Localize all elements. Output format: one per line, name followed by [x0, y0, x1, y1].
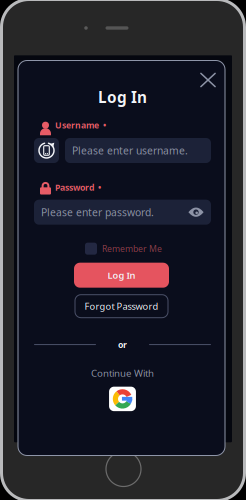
button[interactable]: Continue with Google — [109, 387, 136, 411]
button[interactable]: Rotate device — [34, 138, 59, 163]
staticText: or — [118, 339, 127, 350]
button[interactable]: Remember Me — [85, 243, 162, 255]
staticText: • — [98, 181, 101, 193]
button[interactable]: Forgot Password — [75, 295, 168, 318]
staticText: Please enter username. — [72, 143, 188, 157]
staticText: Continue With — [91, 366, 154, 380]
button[interactable]: Log In — [74, 263, 169, 288]
staticText: Username — [55, 119, 99, 131]
staticText: Forgot Password — [84, 300, 158, 312]
staticText: Log In — [107, 269, 135, 281]
staticText: Log In — [98, 86, 147, 107]
button[interactable]: Please enter password. — [34, 200, 211, 225]
staticText: • — [103, 119, 106, 131]
staticText: Please enter password. — [41, 205, 154, 219]
button[interactable]: Close — [200, 72, 216, 87]
staticText: Remember Me — [102, 243, 162, 255]
button[interactable]: Please enter username. — [65, 138, 211, 163]
staticText: Password — [55, 181, 94, 193]
